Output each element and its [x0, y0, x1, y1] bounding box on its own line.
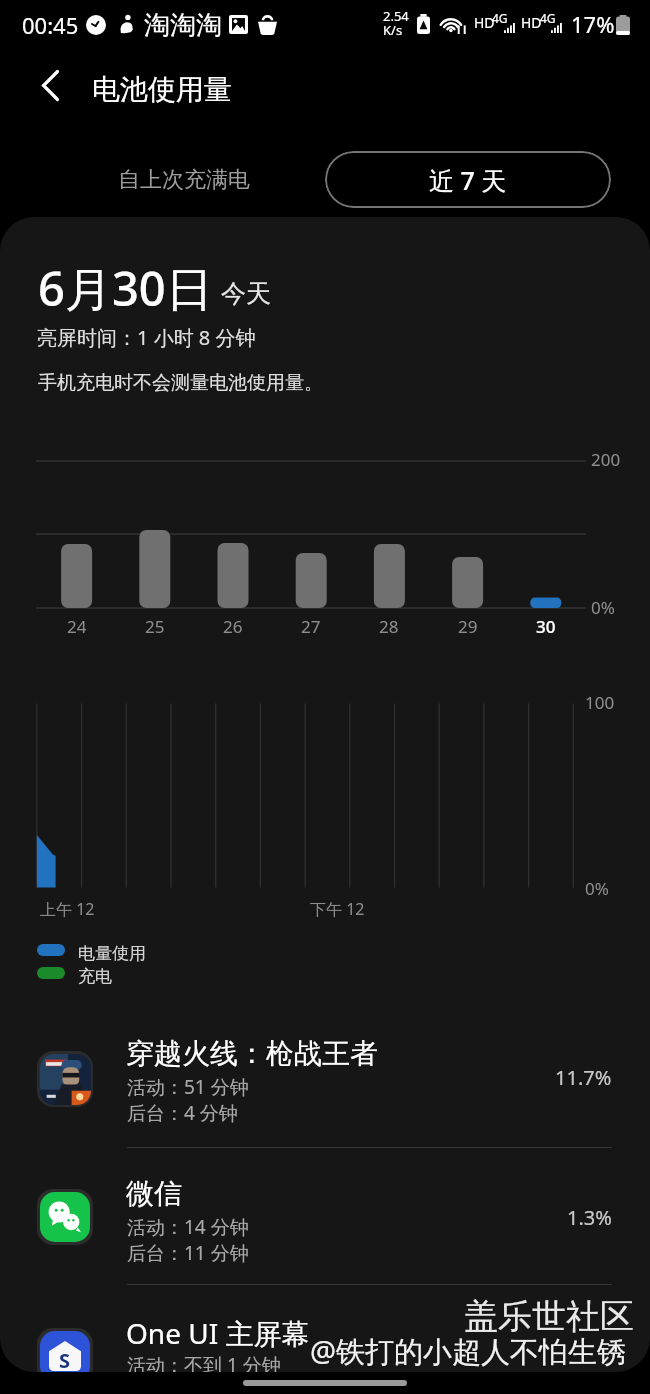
staticText: 1.3%: [567, 1204, 612, 1231]
staticText: 今天: [221, 278, 271, 309]
staticText: 6月30日: [38, 256, 213, 320]
staticText: 活动：14 分钟: [127, 1214, 249, 1240]
staticText: 11.7%: [555, 1064, 612, 1091]
staticText: 电池使用量: [92, 72, 232, 107]
staticText: 200: [591, 448, 621, 471]
staticText: 后台：4 分钟: [127, 1100, 238, 1126]
button[interactable]: 返回: [26, 61, 74, 109]
button[interactable]: 自上次充满电: [96, 151, 271, 208]
button[interactable]: 近 7 天: [325, 151, 611, 208]
staticText: HD: [474, 13, 495, 32]
staticText: S: [59, 1347, 71, 1372]
staticText: 活动：不到 1 分钟: [127, 1352, 281, 1372]
staticText: 4G: [540, 10, 556, 26]
staticText: 后台：11 分钟: [127, 1240, 249, 1266]
staticText: HD: [521, 13, 542, 32]
staticText: 近 7 天: [429, 163, 507, 197]
staticText: 上午 12: [40, 898, 95, 920]
button[interactable]: 微信: [0, 1154, 650, 1289]
staticText: 24: [67, 615, 87, 638]
staticText: 17%: [571, 9, 615, 39]
staticText: 29: [458, 615, 478, 638]
staticText: 手机充电时不会测量电池使用量。: [38, 371, 323, 395]
staticText: 亮屏时间：1 小时 8 分钟: [37, 324, 256, 351]
button[interactable]: 穿越火线：枪战王者: [0, 1014, 650, 1149]
staticText: 26: [223, 615, 243, 638]
staticText: One UI 主屏幕: [126, 1314, 310, 1352]
staticText: 00:45: [22, 10, 79, 40]
staticText: 微信: [126, 1176, 182, 1211]
staticText: 27: [301, 615, 321, 638]
staticText: 2.54: [383, 7, 409, 25]
staticText: 25: [145, 615, 165, 638]
staticText: 0%: [585, 877, 609, 900]
staticText: 4G: [492, 10, 508, 26]
staticText: 盖乐世社区: [464, 1295, 634, 1338]
staticText: 0%: [591, 596, 615, 619]
staticText: 充电: [78, 966, 112, 987]
staticText: 100: [585, 691, 615, 714]
staticText: 电量使用: [78, 943, 146, 964]
button[interactable]: S: [0, 1292, 650, 1372]
staticText: 下午 12: [310, 898, 365, 920]
staticText: 淘淘淘: [144, 9, 222, 42]
staticText: 自上次充满电: [118, 166, 250, 194]
staticText: @铁打的小超人不怕生锈: [310, 1331, 627, 1371]
staticText: 活动：51 分钟: [127, 1074, 249, 1100]
staticText: K/s: [383, 21, 403, 39]
staticText: 28: [379, 615, 399, 638]
staticText: 穿越火线：枪战王者: [126, 1036, 378, 1071]
staticText: 30: [536, 615, 556, 638]
